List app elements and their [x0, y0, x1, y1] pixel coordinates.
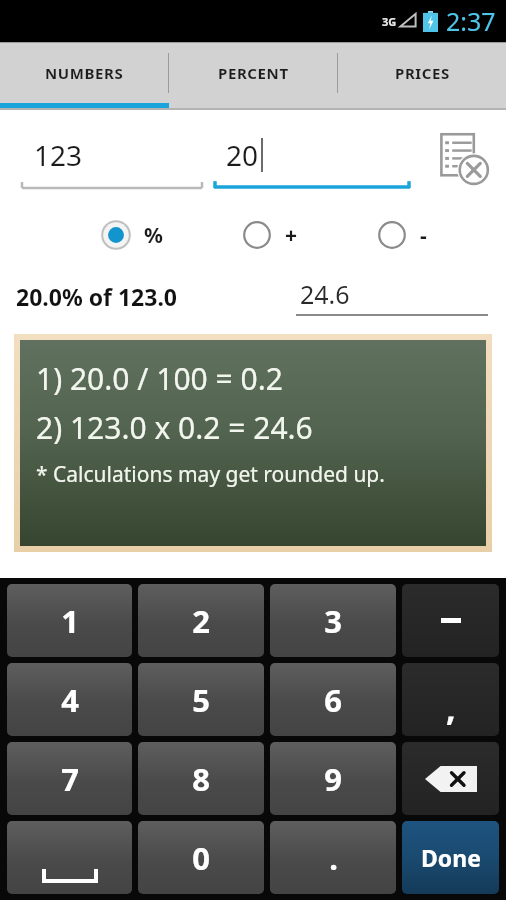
staticText: 2) 123.0 x 0.2 = 24.6 [36, 407, 313, 448]
button[interactable]: 0 [138, 821, 264, 894]
staticText: 4 [61, 679, 79, 721]
staticText: , [446, 685, 456, 731]
staticText: Done [421, 842, 481, 873]
staticText: + [285, 221, 298, 250]
button[interactable]: + [241, 219, 298, 251]
staticText: PRICES [395, 63, 450, 83]
staticText: NUMBERS [45, 63, 124, 83]
button[interactable]: PERCENT [169, 43, 337, 103]
staticText: 8 [192, 758, 210, 800]
staticText: 3 [324, 600, 342, 642]
button[interactable]: Minus [402, 584, 499, 657]
staticText: 0 [192, 837, 210, 879]
staticText: 7 [61, 758, 79, 800]
button[interactable]: NUMBERS [0, 43, 168, 103]
staticText: - [420, 221, 427, 250]
staticText: 2 [192, 600, 210, 642]
button[interactable]: 8 [138, 742, 264, 815]
button[interactable]: Backspace [402, 742, 499, 815]
button[interactable]: Comma [402, 663, 499, 736]
button[interactable]: % [100, 219, 163, 251]
button[interactable]: 5 [138, 663, 264, 736]
staticText: . [329, 837, 338, 879]
staticText: 20.0% of 123.0 [16, 281, 178, 312]
staticText: 24.6 [300, 277, 350, 311]
button[interactable]: 9 [270, 742, 396, 815]
button[interactable]: - [376, 219, 427, 251]
button[interactable]: . [270, 821, 396, 894]
staticText: 20 [226, 136, 259, 174]
button[interactable]: 7 [7, 742, 132, 815]
button[interactable]: Clear [432, 127, 494, 189]
staticText: 6 [324, 679, 342, 721]
staticText: 3G [382, 14, 397, 29]
button[interactable]: Space [7, 821, 132, 894]
staticText: * Calculations may get rounded up. [36, 460, 385, 489]
button[interactable]: 3 [270, 584, 396, 657]
button[interactable]: 6 [270, 663, 396, 736]
staticText: 2:37 [446, 4, 496, 38]
staticText: 1) 20.0 / 100 = 0.2 [36, 358, 283, 399]
button[interactable]: PRICES [338, 43, 506, 103]
staticText: 1 [61, 600, 79, 642]
staticText: 123 [34, 136, 83, 174]
button[interactable]: 2 [138, 584, 264, 657]
button[interactable]: 24.6 [296, 274, 492, 318]
other: Backspace [425, 766, 477, 792]
button[interactable]: 20 [214, 122, 410, 194]
button[interactable]: 1 [7, 584, 132, 657]
staticText: PERCENT [218, 63, 289, 83]
staticText: 9 [324, 758, 342, 800]
button[interactable]: Done [402, 821, 499, 894]
button[interactable]: 123 [22, 122, 202, 194]
other: Comma [446, 685, 456, 731]
staticText: 5 [192, 679, 210, 721]
button[interactable]: 4 [7, 663, 132, 736]
staticText: % [144, 221, 163, 250]
